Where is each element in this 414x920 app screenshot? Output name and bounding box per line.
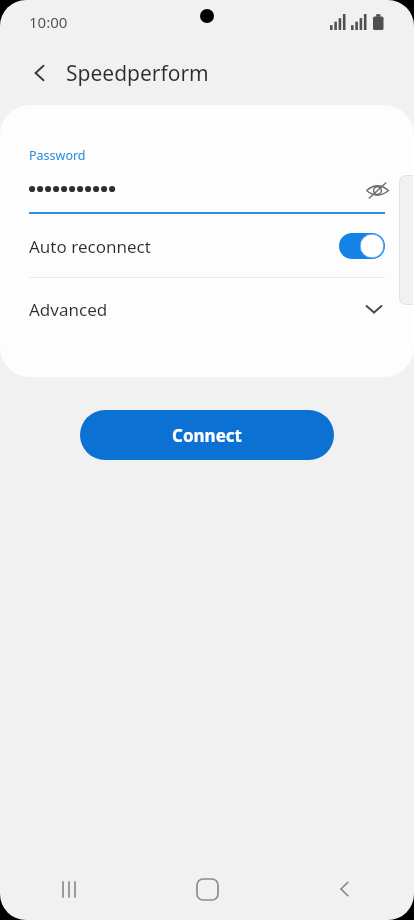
button[interactable]: Connect xyxy=(80,410,334,460)
button[interactable]: Auto reconnect toggle xyxy=(339,233,385,259)
button[interactable]: Auto reconnect xyxy=(0,215,414,277)
button[interactable]: Back xyxy=(20,53,60,93)
staticText: Speedperform xyxy=(66,59,209,88)
staticText: Connect xyxy=(172,424,242,447)
staticText: 10:00 xyxy=(29,12,68,32)
staticText: Password xyxy=(29,147,86,164)
button[interactable]: Password xyxy=(0,105,414,215)
staticText: Auto reconnect xyxy=(29,235,339,258)
other: Expand advanced xyxy=(358,293,390,325)
staticText: Advanced xyxy=(29,298,358,321)
button[interactable]: Home xyxy=(138,858,276,920)
button[interactable]: Show password xyxy=(360,173,394,207)
button[interactable]: Advanced xyxy=(0,278,414,340)
button[interactable]: Back xyxy=(276,858,414,920)
button[interactable]: Recent apps xyxy=(0,858,138,920)
